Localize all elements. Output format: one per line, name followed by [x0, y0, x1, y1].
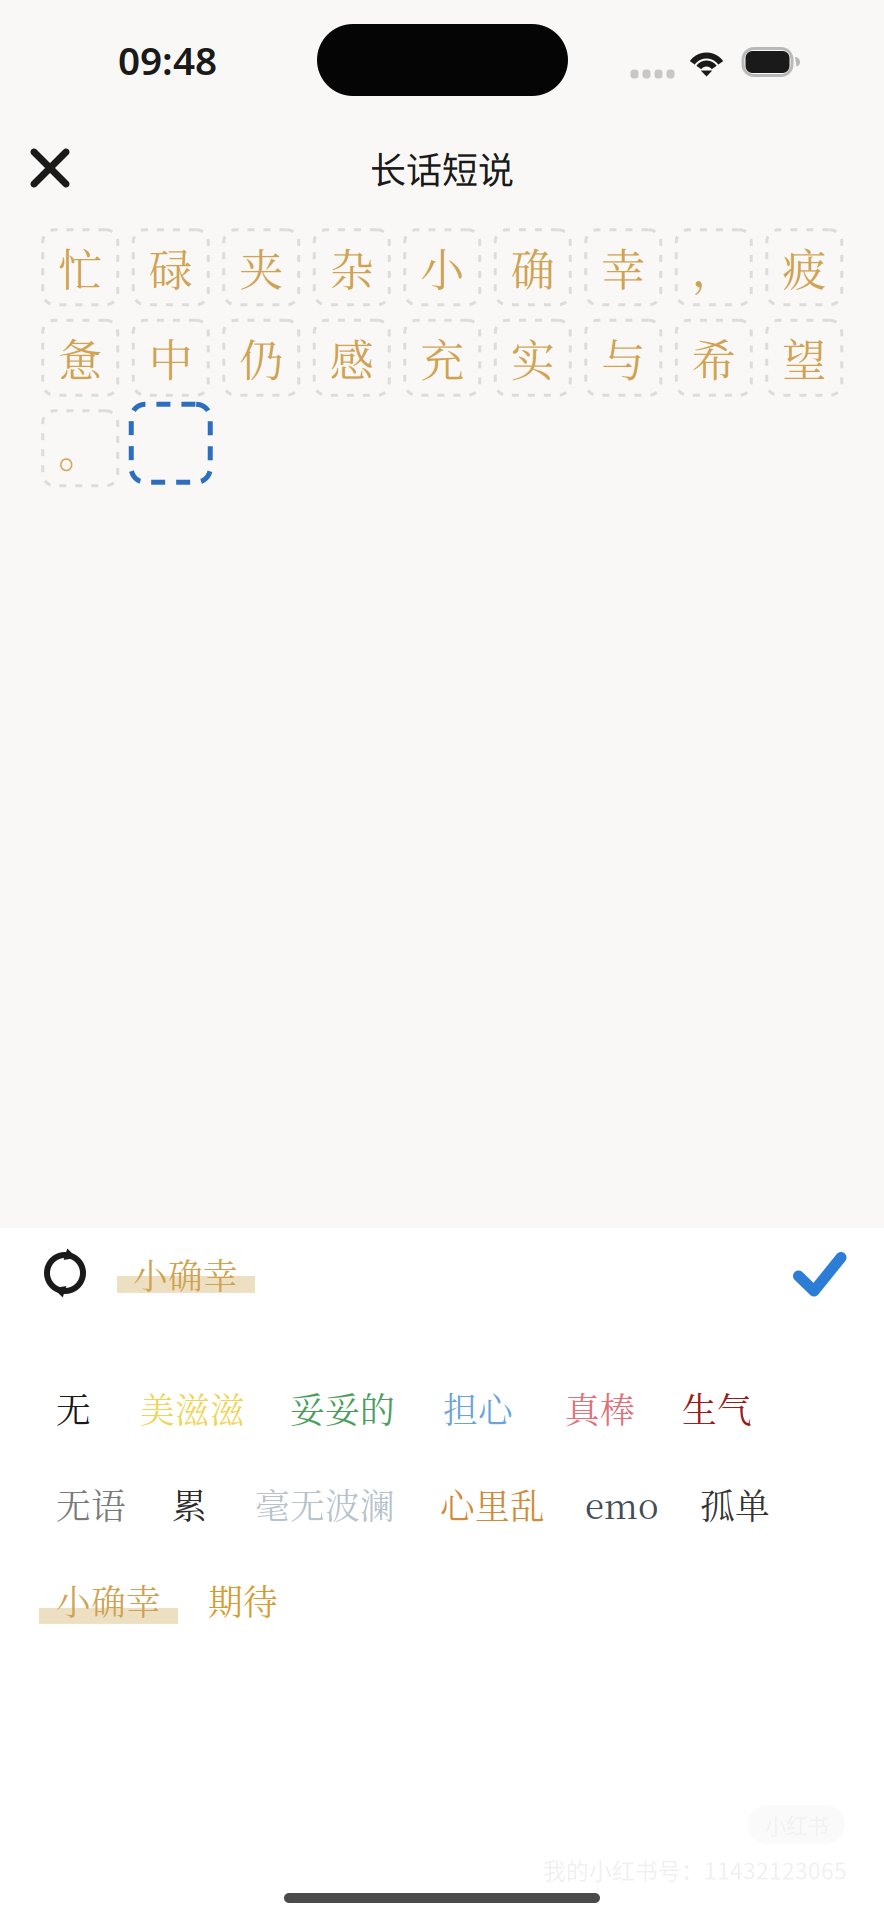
staticText: 忙 [58, 236, 102, 299]
staticText: 望 [782, 326, 826, 389]
staticText: 生气 [682, 1383, 752, 1433]
button[interactable]: 生气 [665, 1374, 769, 1442]
staticText: 确 [511, 236, 555, 299]
button[interactable]: 累 [155, 1470, 224, 1538]
button[interactable]: Close [0, 127, 93, 209]
staticText: 心里乱 [440, 1479, 545, 1529]
staticText: 。 [58, 417, 102, 480]
staticText: ， [692, 236, 736, 299]
button[interactable]: 美滋滋 [123, 1374, 262, 1442]
staticText: 与 [601, 326, 645, 389]
button[interactable]: 毫无波澜 [238, 1470, 412, 1538]
staticText: 惫 [58, 326, 102, 389]
staticText: 累 [172, 1479, 207, 1529]
staticText: 长话短说 [370, 142, 514, 194]
button[interactable]: Shuffle [32, 1242, 98, 1306]
button[interactable]: 孤单 [683, 1470, 787, 1538]
staticText: 中 [149, 326, 193, 389]
staticText: 希 [692, 326, 736, 389]
staticText: 妥妥的 [290, 1383, 395, 1433]
button[interactable]: 期待 [191, 1566, 295, 1634]
staticText: 小 [420, 236, 464, 299]
staticText: 孤单 [700, 1479, 770, 1529]
button[interactable]: Done [783, 1242, 856, 1306]
staticText: 实 [511, 326, 555, 389]
staticText: 疲 [782, 236, 826, 299]
button[interactable]: 真棒 [548, 1374, 652, 1442]
staticText: 美滋滋 [140, 1383, 245, 1433]
staticText: 感 [330, 326, 374, 389]
staticText: emo [585, 1479, 659, 1529]
button[interactable]: 心里乱 [423, 1470, 562, 1538]
staticText: 夹 [239, 236, 283, 299]
button[interactable]: 担心 [426, 1374, 530, 1442]
button[interactable]: 无 [39, 1374, 108, 1442]
staticText: 毫无波澜 [255, 1479, 395, 1529]
staticText: 小确幸 [56, 1575, 161, 1625]
button[interactable]: 无语 [39, 1470, 143, 1538]
staticText: 无语 [56, 1479, 126, 1529]
staticText: 仍 [239, 326, 283, 389]
staticText: 09:48 [118, 34, 217, 86]
button[interactable]: 妥妥的 [273, 1374, 412, 1442]
staticText: 幸 [601, 236, 645, 299]
staticText: 期待 [208, 1575, 278, 1625]
staticText: 杂 [330, 236, 374, 299]
staticText: 碌 [149, 236, 193, 299]
staticText: 小确幸 [133, 1249, 238, 1299]
staticText: 充 [420, 326, 464, 389]
button[interactable]: 小确幸 [39, 1566, 178, 1634]
button[interactable]: emo [568, 1470, 676, 1538]
staticText: 真棒 [565, 1383, 635, 1433]
staticText: 担心 [443, 1383, 513, 1433]
staticText: 我的小红书号：11432123065 [543, 1853, 847, 1886]
staticText: 无 [56, 1383, 91, 1433]
